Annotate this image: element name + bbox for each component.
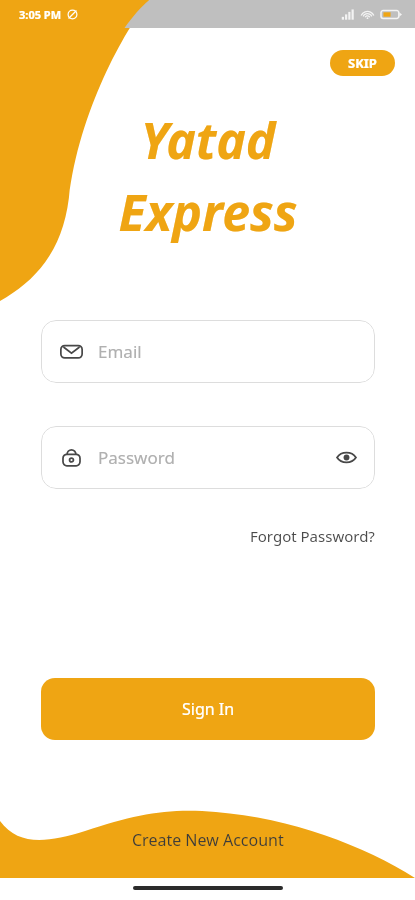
staticText: Password: [98, 446, 175, 469]
staticText: Yatad: [140, 106, 276, 174]
staticText: Email: [98, 340, 142, 363]
button[interactable]: SKIP: [330, 50, 395, 76]
button[interactable]: Forgot Password?: [205, 521, 375, 551]
button[interactable]: Email: [41, 320, 375, 383]
button[interactable]: Password: [41, 426, 375, 489]
staticText: Create New Account: [132, 829, 284, 851]
staticText: 3:05 PM: [19, 7, 62, 22]
button[interactable]: Create New Account: [0, 823, 415, 857]
staticText: Sign In: [182, 698, 235, 720]
button[interactable]: Sign In: [41, 678, 375, 740]
staticText: Express: [118, 178, 298, 246]
staticText: Forgot Password?: [250, 526, 375, 546]
button[interactable]: Show password: [334, 445, 359, 470]
staticText: SKIP: [348, 54, 377, 72]
